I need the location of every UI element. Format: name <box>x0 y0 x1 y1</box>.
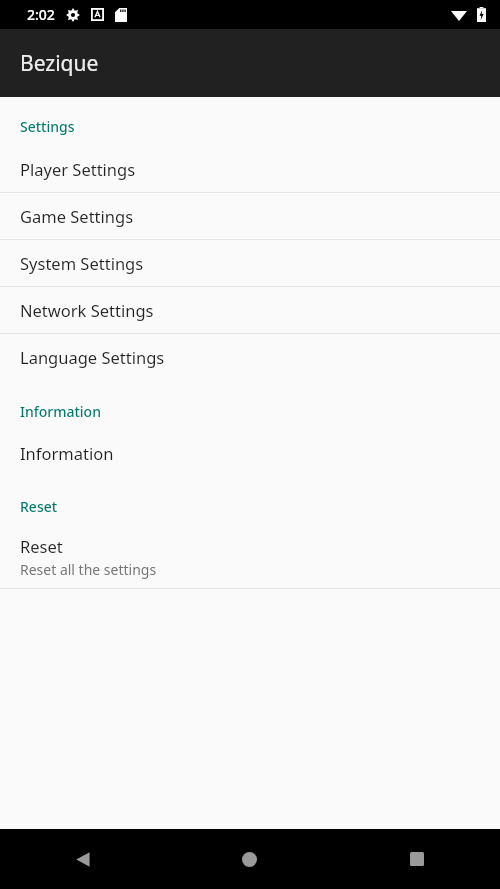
staticText: Network Settings <box>20 299 154 321</box>
button[interactable]: Network Settings <box>0 287 500 333</box>
button[interactable]: Game Settings <box>0 193 500 239</box>
staticText: Reset <box>20 497 500 516</box>
staticText: Player Settings <box>20 158 136 180</box>
button[interactable]: System Settings <box>0 240 500 286</box>
staticText: Information <box>20 442 114 464</box>
button[interactable]: Language Settings <box>0 334 500 380</box>
staticText: System Settings <box>20 252 144 274</box>
staticText: 2:02 <box>27 5 55 24</box>
staticText: Bezique <box>20 49 99 78</box>
button[interactable]: Home <box>166 829 333 889</box>
staticText: Game Settings <box>20 205 134 227</box>
button[interactable]: Player Settings <box>0 146 500 192</box>
staticText: Reset all the settings <box>20 560 157 579</box>
staticText: Settings <box>20 117 500 136</box>
staticText: Language Settings <box>20 346 165 368</box>
button[interactable]: Information <box>0 431 500 475</box>
button[interactable]: Reset <box>0 526 500 588</box>
staticText: Information <box>20 402 500 421</box>
staticText: Reset <box>20 535 63 557</box>
button[interactable]: Recent apps <box>333 829 500 889</box>
button[interactable]: Back <box>0 829 166 889</box>
